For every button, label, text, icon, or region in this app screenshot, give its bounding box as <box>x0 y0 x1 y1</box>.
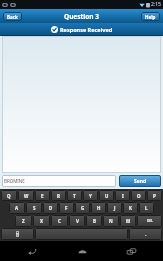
staticText: U <box>105 193 109 199</box>
button[interactable]: C <box>51 215 68 227</box>
button[interactable]: Y <box>83 190 98 201</box>
staticText: E <box>41 193 44 199</box>
button[interactable]: DEL <box>137 215 162 227</box>
button[interactable]: H <box>91 202 106 214</box>
staticText: A <box>15 205 19 211</box>
button[interactable]: P <box>147 190 162 201</box>
button[interactable]: Back <box>15 241 49 261</box>
staticText: Send <box>134 178 147 185</box>
button[interactable]: Back <box>3 12 22 21</box>
button[interactable]: W <box>18 190 34 201</box>
staticText: X <box>40 218 44 224</box>
button[interactable]: A <box>9 202 25 214</box>
staticText: H <box>97 205 101 211</box>
button[interactable]: Help <box>141 12 160 21</box>
button[interactable]: K <box>123 202 138 214</box>
button[interactable]: F <box>59 202 74 214</box>
staticText: S <box>33 205 36 211</box>
staticText: Response Received <box>60 26 113 33</box>
staticText: Z <box>22 218 25 224</box>
staticText: O <box>137 193 141 199</box>
staticText: ⌸ <box>16 231 20 237</box>
button[interactable]: U <box>99 190 114 201</box>
button[interactable]: N <box>103 215 119 227</box>
button[interactable]: Symbols <box>1 228 34 240</box>
button[interactable]: Period <box>129 228 162 240</box>
staticText: Back <box>7 14 18 20</box>
button[interactable]: Home <box>65 241 99 261</box>
button[interactable]: L <box>139 202 154 214</box>
button[interactable]: V <box>69 215 85 227</box>
staticText: N <box>109 218 113 224</box>
staticText: I <box>122 193 124 199</box>
staticText: B <box>93 218 96 224</box>
button[interactable]: B <box>86 215 102 227</box>
button[interactable]: Space <box>35 228 128 240</box>
button[interactable]: D <box>43 202 58 214</box>
staticText: R <box>57 193 60 199</box>
staticText: BROMINE <box>4 178 25 184</box>
button[interactable]: T <box>67 190 82 201</box>
button[interactable]: J <box>107 202 122 214</box>
button[interactable]: S <box>26 202 42 214</box>
staticText: P <box>153 193 156 199</box>
staticText: 2:15 <box>151 1 161 8</box>
staticText: . <box>145 231 147 238</box>
button[interactable]: Z <box>15 215 32 227</box>
staticText: C <box>58 218 61 224</box>
button[interactable]: BROMINE <box>2 175 116 187</box>
staticText: G <box>81 205 85 211</box>
staticText: D <box>49 205 53 211</box>
button[interactable]: O <box>131 190 146 201</box>
button[interactable]: Recents <box>114 241 148 261</box>
staticText: W <box>24 193 29 199</box>
button[interactable]: R <box>51 190 66 201</box>
staticText: DEL <box>147 219 153 223</box>
button[interactable]: M <box>120 215 136 227</box>
button[interactable]: E <box>35 190 50 201</box>
staticText: K <box>129 205 132 211</box>
button[interactable]: X <box>33 215 50 227</box>
staticText: F <box>65 205 68 211</box>
staticText: Q <box>7 193 11 199</box>
staticText: T <box>73 193 76 199</box>
button[interactable]: I <box>115 190 130 201</box>
staticText: L <box>145 205 148 211</box>
button[interactable]: Send <box>119 175 161 187</box>
button[interactable]: Q <box>1 190 17 201</box>
staticText: Question 3 <box>64 12 99 21</box>
staticText: J <box>114 205 116 211</box>
staticText: V <box>76 218 79 224</box>
button[interactable]: G <box>75 202 90 214</box>
staticText: Help <box>145 14 156 20</box>
staticText: M <box>126 218 131 224</box>
staticText: Y <box>89 193 92 199</box>
